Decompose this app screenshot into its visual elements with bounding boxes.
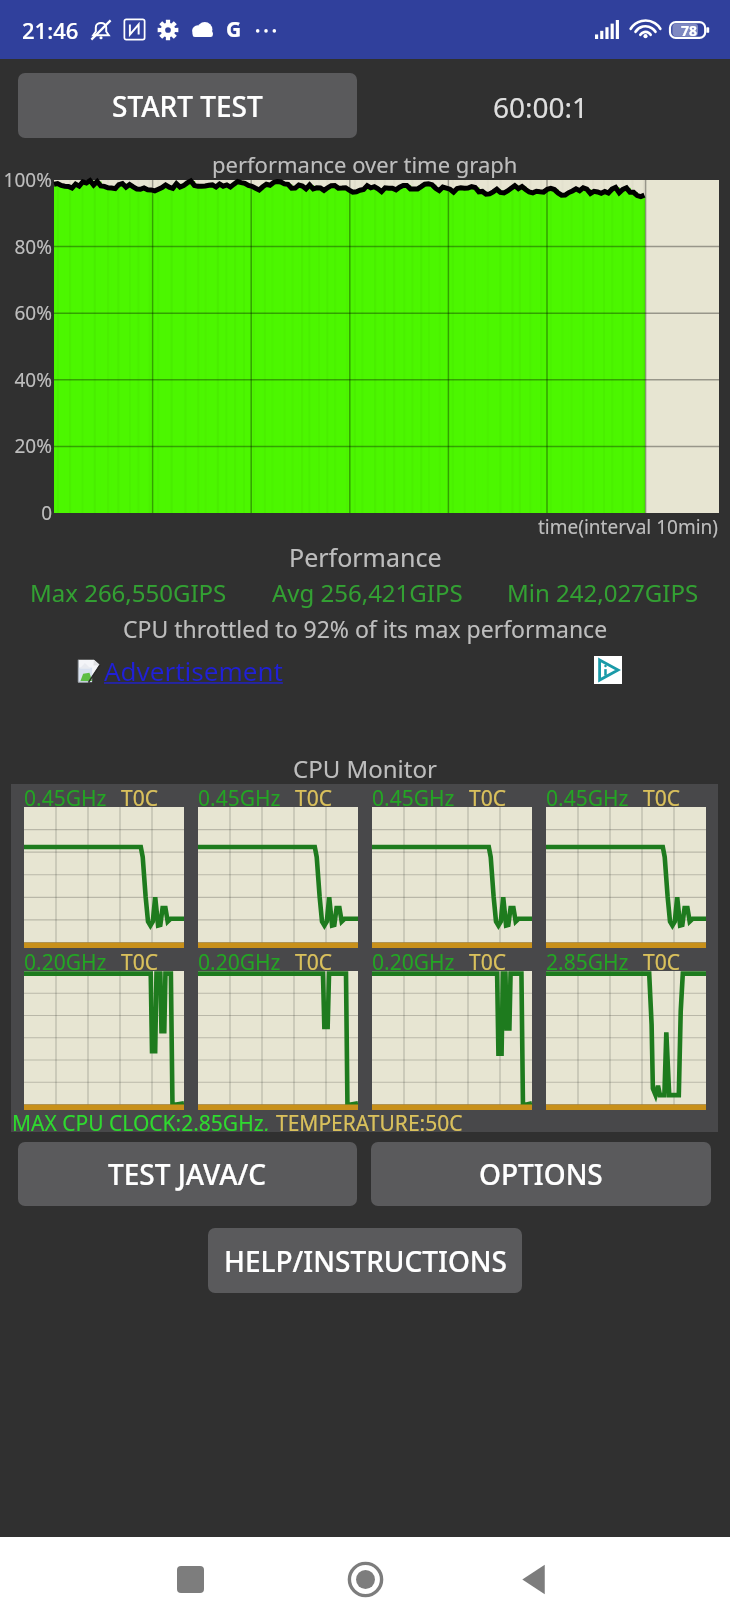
- staticText: Advertisement: [104, 653, 283, 688]
- staticText: T0C: [121, 948, 158, 971]
- button[interactable]: HELP/INSTRUCTIONS: [208, 1228, 522, 1293]
- staticText: HELP/INSTRUCTIONS: [224, 1242, 507, 1280]
- button[interactable]: Home: [330, 1537, 400, 1622]
- staticText: 0.20GHz: [24, 948, 107, 971]
- staticText: 2.85GHz: [546, 948, 629, 971]
- staticText: OPTIONS: [479, 1155, 603, 1193]
- button[interactable]: START TEST: [18, 73, 357, 138]
- staticText: 80%: [14, 234, 52, 260]
- staticText: 60:00:1: [493, 88, 589, 126]
- button[interactable]: Advertisement: [76, 653, 283, 688]
- staticText: 100%: [3, 167, 52, 193]
- staticText: T0C: [295, 948, 332, 971]
- staticText: Max 266,550GIPS: [30, 576, 227, 609]
- staticText: performance over time graph: [212, 149, 518, 179]
- staticText: 40%: [14, 367, 52, 393]
- staticText: 60%: [14, 300, 52, 326]
- staticText: G: [226, 15, 242, 44]
- staticText: Min 242,027GIPS: [507, 576, 699, 609]
- staticText: 0: [41, 500, 52, 526]
- staticText: MAX CPU CLOCK:2.85GHz,: [12, 1109, 270, 1131]
- staticText: 0.45GHz: [198, 784, 281, 807]
- staticText: 0.45GHz: [372, 784, 455, 807]
- staticText: 0.20GHz: [372, 948, 455, 971]
- staticText: 0.45GHz: [24, 784, 107, 807]
- staticText: T0C: [295, 784, 332, 807]
- staticText: 0.20GHz: [198, 948, 281, 971]
- staticText: CPU throttled to 92% of its max performa…: [123, 613, 608, 644]
- staticText: 21:46: [22, 15, 79, 45]
- staticText: T0C: [643, 784, 680, 807]
- button[interactable]: Back: [500, 1537, 570, 1622]
- staticText: Avg 256,421GIPS: [272, 576, 463, 609]
- staticText: 78: [681, 21, 698, 40]
- staticText: T0C: [121, 784, 158, 807]
- staticText: TEST JAVA/C: [108, 1155, 267, 1193]
- staticText: START TEST: [112, 87, 263, 125]
- staticText: T0C: [643, 948, 680, 971]
- button[interactable]: Recent apps: [155, 1537, 225, 1622]
- staticText: CPU Monitor: [293, 752, 437, 784]
- staticText: 0.45GHz: [546, 784, 629, 807]
- staticText: T0C: [469, 784, 506, 807]
- staticText: T0C: [469, 948, 506, 971]
- staticText: 20%: [14, 433, 52, 459]
- staticText: TEMPERATURE:50C: [276, 1109, 463, 1131]
- staticText: Performance: [289, 540, 442, 574]
- button[interactable]: Ad choices: [594, 656, 622, 684]
- button[interactable]: TEST JAVA/C: [18, 1142, 357, 1206]
- staticText: time(interval 10min): [538, 514, 719, 540]
- button[interactable]: OPTIONS: [371, 1142, 711, 1206]
